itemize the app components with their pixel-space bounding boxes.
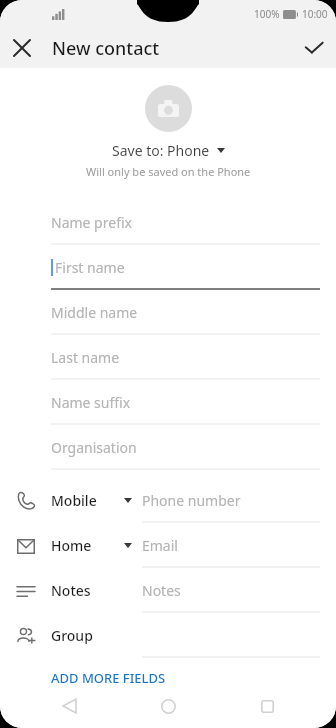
staticText: 100%: [254, 7, 280, 21]
staticText: First name: [55, 258, 125, 277]
staticText: ADD MORE FIELDS: [51, 669, 166, 687]
button[interactable]: Organisation: [0, 425, 336, 470]
staticText: Middle name: [51, 303, 138, 322]
staticText: 10:00: [302, 7, 328, 21]
button[interactable]: First name: [0, 245, 336, 290]
button[interactable]: Back: [39, 684, 99, 728]
staticText: Notes: [142, 581, 181, 600]
button[interactable]: Name prefix: [0, 200, 336, 245]
staticText: Will only be saved on the Phone: [86, 164, 251, 179]
staticText: Phone number: [142, 491, 241, 510]
staticText: Email: [142, 536, 178, 555]
button[interactable]: Last name: [0, 335, 336, 380]
button[interactable]: ADD MORE FIELDS: [0, 658, 336, 698]
button[interactable]: Name suffix: [0, 380, 336, 425]
button[interactable]: Save contact: [292, 28, 336, 68]
button[interactable]: Add photo: [145, 85, 192, 132]
button[interactable]: Group: [0, 613, 336, 658]
button[interactable]: Recent apps: [237, 684, 297, 728]
staticText: Mobile: [51, 491, 97, 510]
button[interactable]: Save to: Phone: [106, 139, 231, 162]
staticText: Name suffix: [51, 393, 131, 412]
staticText: Group: [51, 626, 93, 645]
button[interactable]: Home: [0, 523, 336, 568]
staticText: Home: [51, 536, 92, 555]
staticText: Notes: [51, 581, 91, 600]
button[interactable]: Mobile: [0, 478, 336, 523]
button[interactable]: Home: [138, 684, 198, 728]
staticText: Name prefix: [51, 213, 132, 232]
staticText: Organisation: [51, 438, 137, 457]
button[interactable]: Close: [0, 28, 44, 68]
staticText: New contact: [52, 36, 160, 61]
staticText: Save to: Phone: [112, 141, 210, 160]
button[interactable]: Middle name: [0, 290, 336, 335]
staticText: Last name: [51, 348, 120, 367]
button[interactable]: Notes: [0, 568, 336, 613]
